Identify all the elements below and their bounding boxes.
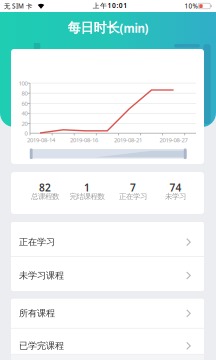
staticText: 总课程数 (31, 192, 59, 201)
staticText: 2019-08-16 (70, 136, 98, 144)
staticText: 上午10:01 (93, 1, 127, 10)
staticText: 20 (21, 119, 27, 127)
staticText: 2019-08-27 (159, 136, 187, 144)
button[interactable]: 未学习课程 (11, 257, 204, 291)
staticText: 完结课程数 (69, 192, 104, 201)
staticText: 82 (39, 181, 51, 194)
staticText: 60 (21, 99, 27, 107)
staticText: 已学完课程 (19, 340, 64, 351)
button[interactable]: 所有课程 (11, 299, 204, 328)
button[interactable]: 正在学习 (11, 222, 204, 256)
staticText: 正在学习 (19, 236, 55, 248)
staticText: 所有课程 (19, 308, 55, 319)
staticText: 100 (18, 79, 27, 87)
staticText: 0 (24, 129, 27, 137)
staticText: 2019-08-21 (114, 136, 142, 144)
staticText: 7 (130, 181, 136, 194)
staticText: 每日时长(min) (67, 20, 148, 36)
staticText: 2019-08-14 (27, 136, 55, 144)
staticText: 1 (84, 181, 90, 194)
staticText: 未学习课程 (19, 270, 64, 281)
staticText: 74 (169, 181, 181, 194)
button[interactable]: 已学完课程 (11, 329, 204, 354)
staticText: 80 (21, 89, 27, 97)
staticText: 10% (184, 2, 197, 10)
staticText: 未学习 (165, 192, 186, 201)
staticText: 正在学习 (119, 192, 147, 201)
staticText: 40 (21, 109, 27, 117)
staticText: 无 SIM 卡 (4, 2, 32, 10)
